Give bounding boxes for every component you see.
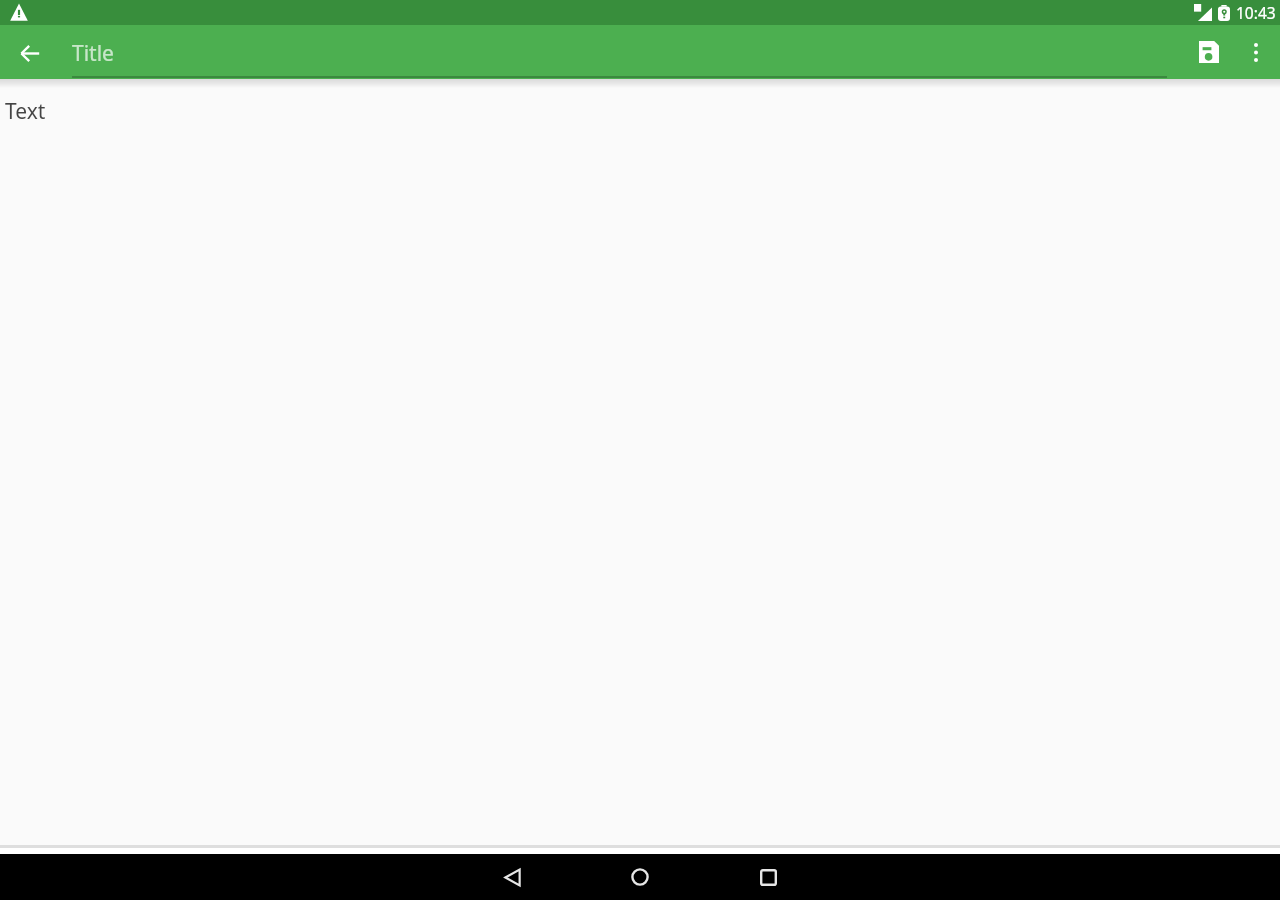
button[interactable]: Save xyxy=(1184,28,1232,76)
button[interactable]: Back xyxy=(472,854,552,900)
staticText: Text xyxy=(5,97,46,126)
button[interactable]: Recent apps xyxy=(728,854,808,900)
staticText: Title xyxy=(72,39,114,68)
button[interactable]: Home xyxy=(600,854,680,900)
staticText: 10:43 xyxy=(1236,2,1276,23)
button[interactable]: Navigate up xyxy=(0,25,60,79)
button[interactable]: Title xyxy=(72,25,1167,79)
button[interactable]: More options xyxy=(1232,28,1280,76)
